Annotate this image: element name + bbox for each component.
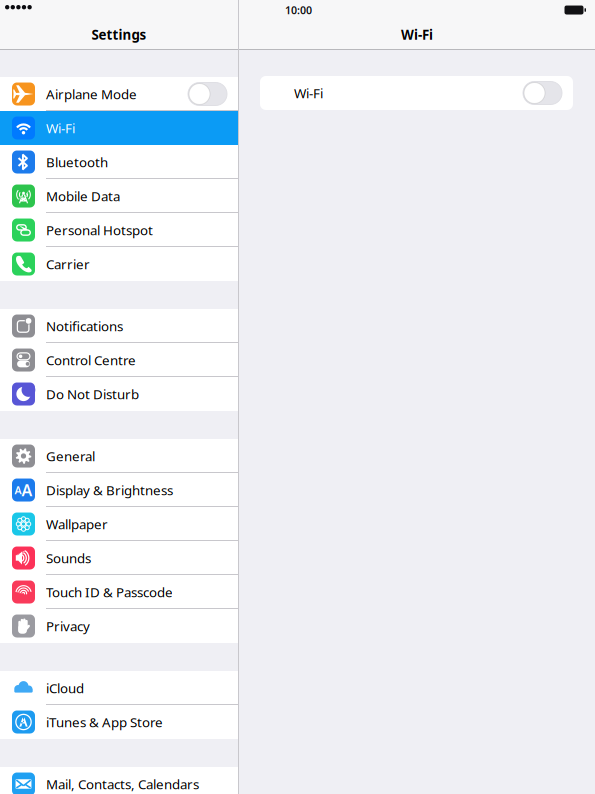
staticText: Airplane Mode	[46, 85, 137, 103]
staticText: Bluetooth	[46, 153, 108, 171]
staticText: Control Centre	[46, 351, 136, 369]
staticText: Carrier	[46, 255, 90, 273]
button[interactable]: Wi-Fi	[260, 76, 573, 110]
staticText: 10:00	[285, 3, 312, 17]
button[interactable]: Privacy	[0, 609, 238, 643]
button[interactable]: A	[0, 473, 238, 507]
staticText: iCloud	[46, 679, 84, 697]
button[interactable]: Mail, Contacts, Calendars	[0, 767, 238, 794]
staticText: Wi-Fi	[46, 119, 75, 137]
button[interactable]: Mobile Data	[0, 179, 238, 213]
staticText: Wi-Fi	[401, 26, 433, 43]
staticText: Personal Hotspot	[46, 221, 153, 239]
button[interactable]: Carrier	[0, 247, 238, 281]
button[interactable]: Personal Hotspot	[0, 213, 238, 247]
staticText: Mobile Data	[46, 187, 120, 205]
staticText: A	[21, 479, 32, 501]
staticText: Sounds	[46, 549, 91, 567]
button[interactable]: Touch ID & Passcode	[0, 575, 238, 609]
button[interactable]: Wallpaper	[0, 507, 238, 541]
button[interactable]: Airplane Mode	[0, 77, 238, 111]
button[interactable]: Do Not Disturb	[0, 377, 238, 411]
button[interactable]: Notifications	[0, 309, 238, 343]
staticText: Display & Brightness	[46, 481, 173, 499]
staticText: Do Not Disturb	[46, 385, 139, 403]
staticText: Privacy	[46, 617, 90, 635]
button[interactable]: iTunes & App Store	[0, 705, 238, 739]
button[interactable]: iCloud	[0, 671, 238, 705]
button[interactable]: General	[0, 439, 238, 473]
button[interactable]: Bluetooth	[0, 145, 238, 179]
staticText: Wallpaper	[46, 515, 108, 533]
staticText: Wi-Fi	[294, 84, 323, 102]
staticText: A	[14, 483, 21, 497]
button[interactable]: Wi-Fi	[0, 111, 238, 145]
staticText: General	[46, 447, 95, 465]
staticText: Mail, Contacts, Calendars	[46, 775, 199, 793]
staticText: Settings	[91, 26, 146, 43]
staticText: Notifications	[46, 317, 123, 335]
button[interactable]: Control Centre	[0, 343, 238, 377]
staticText: Touch ID & Passcode	[46, 583, 173, 601]
staticText: iTunes & App Store	[46, 713, 163, 731]
button[interactable]: Sounds	[0, 541, 238, 575]
